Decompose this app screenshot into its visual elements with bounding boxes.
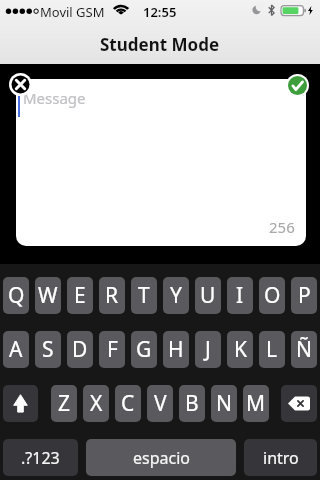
staticText: M <box>246 389 266 418</box>
staticText: espacio <box>133 447 190 469</box>
staticText: T <box>138 281 150 310</box>
staticText: K <box>234 335 247 364</box>
button[interactable]: M <box>243 385 269 422</box>
staticText: F <box>107 335 118 364</box>
button[interactable]: G <box>131 331 157 368</box>
button[interactable]: I <box>227 277 253 314</box>
staticText: Movil GSM <box>40 3 105 21</box>
button[interactable]: L <box>259 331 285 368</box>
button[interactable]: B <box>179 385 205 422</box>
button[interactable]: O <box>259 277 285 314</box>
staticText: L <box>266 335 278 364</box>
staticText: A <box>9 335 23 364</box>
staticText: X <box>90 389 103 418</box>
button[interactable]: E <box>67 277 93 314</box>
button[interactable]: X <box>83 385 109 422</box>
button[interactable]: Y <box>163 277 189 314</box>
button[interactable]: S <box>35 331 61 368</box>
button[interactable] <box>286 74 309 97</box>
button[interactable] <box>3 385 38 422</box>
staticText: V <box>154 389 167 418</box>
button[interactable]: U <box>195 277 221 314</box>
button[interactable] <box>281 385 317 422</box>
staticText: Student Mode <box>100 33 220 56</box>
staticText: Z <box>58 389 71 418</box>
button[interactable]: N <box>211 385 237 422</box>
staticText: I <box>236 281 244 310</box>
button[interactable]: .?123 <box>3 439 78 476</box>
button[interactable]: D <box>67 331 93 368</box>
staticText: Message <box>23 88 86 108</box>
button[interactable] <box>9 73 32 96</box>
button[interactable]: Ñ <box>291 331 317 368</box>
staticText: C <box>121 389 135 418</box>
staticText: E <box>74 281 86 310</box>
button[interactable]: F <box>99 331 125 368</box>
staticText: H <box>168 335 184 364</box>
staticText: R <box>105 281 119 310</box>
button[interactable]: R <box>99 277 125 314</box>
button[interactable]: J <box>195 331 221 368</box>
staticText: 12:55 <box>143 3 177 21</box>
button[interactable]: Q <box>3 277 29 314</box>
staticText: O <box>264 281 281 310</box>
button[interactable]: W <box>35 277 61 314</box>
button[interactable]: V <box>147 385 173 422</box>
staticText: U <box>200 281 216 310</box>
staticText: W <box>38 281 58 310</box>
staticText: Q <box>8 281 25 310</box>
button[interactable]: espacio <box>86 439 236 476</box>
button[interactable]: C <box>115 385 141 422</box>
staticText: .?123 <box>21 447 60 469</box>
button[interactable]: K <box>227 331 253 368</box>
staticText: 256 <box>269 217 295 237</box>
staticText: Y <box>170 281 182 310</box>
staticText: B <box>185 389 199 418</box>
button[interactable]: A <box>3 331 29 368</box>
staticText: D <box>72 335 88 364</box>
staticText: J <box>205 335 211 364</box>
staticText: S <box>42 335 54 364</box>
staticText: Ñ <box>296 335 312 364</box>
staticText: N <box>216 389 232 418</box>
button[interactable]: P <box>291 277 317 314</box>
staticText: P <box>298 281 311 310</box>
button[interactable]: T <box>131 277 157 314</box>
button[interactable]: intro <box>244 439 317 476</box>
button[interactable]: Z <box>51 385 77 422</box>
staticText: G <box>136 335 152 364</box>
button[interactable]: Message <box>16 79 306 246</box>
staticText: intro <box>263 447 299 469</box>
button[interactable]: H <box>163 331 189 368</box>
